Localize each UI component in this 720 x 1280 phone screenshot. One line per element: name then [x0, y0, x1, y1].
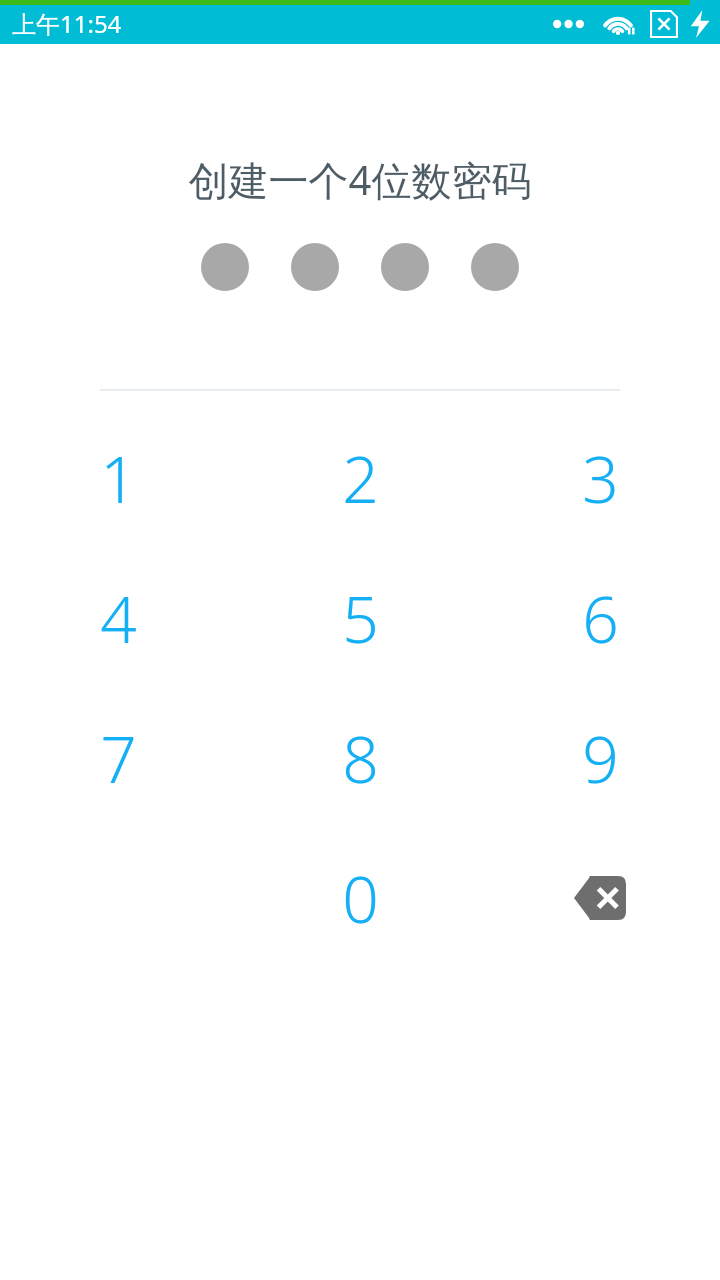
staticText: 0: [342, 855, 379, 942]
staticText: 1: [100, 435, 137, 522]
button[interactable]: 4: [18, 553, 218, 683]
button[interactable]: Backspace: [500, 833, 700, 963]
staticText: 9: [582, 715, 619, 802]
staticText: 创建一个4位数密码: [0, 152, 720, 207]
staticText: 上午11:54: [12, 7, 122, 40]
staticText: 2: [342, 435, 379, 522]
button[interactable]: 3: [500, 413, 700, 543]
staticText: 3: [582, 435, 619, 522]
button[interactable]: 1: [18, 413, 218, 543]
button[interactable]: 6: [500, 553, 700, 683]
staticText: 5: [342, 575, 379, 662]
button[interactable]: 7: [18, 693, 218, 823]
staticText: 7: [100, 715, 137, 802]
button[interactable]: 5: [260, 553, 460, 683]
button[interactable]: 0: [260, 833, 460, 963]
staticText: 4: [100, 575, 137, 662]
staticText: 8: [342, 715, 379, 802]
button[interactable]: 2: [260, 413, 460, 543]
button[interactable]: 9: [500, 693, 700, 823]
button[interactable]: 8: [260, 693, 460, 823]
staticText: 6: [582, 575, 619, 662]
